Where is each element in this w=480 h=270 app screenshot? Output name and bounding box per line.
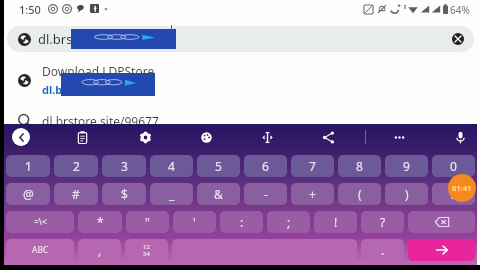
button[interactable]: ' (173, 211, 216, 233)
staticText: 1:50 (19, 2, 41, 17)
staticText: 3 (121, 158, 128, 174)
button[interactable]: 9 (385, 155, 428, 177)
staticText: " (145, 214, 150, 230)
staticText: 2 (73, 158, 80, 174)
staticText: =\< (34, 216, 47, 228)
button[interactable]: 4 (150, 155, 193, 177)
button[interactable]: ABC (6, 239, 74, 261)
button[interactable]: ) (385, 183, 428, 205)
staticText: & (214, 186, 223, 202)
staticText: 4 (168, 158, 175, 174)
staticText: dl.brs (38, 30, 73, 48)
button[interactable]: 5 (197, 155, 240, 177)
staticText: _ (169, 186, 175, 202)
button[interactable]: Back (12, 128, 30, 146)
staticText: 6 (262, 158, 269, 174)
button[interactable]: # (54, 183, 98, 205)
staticText: , (98, 242, 102, 258)
button[interactable]: _ (150, 183, 193, 205)
button[interactable] (408, 239, 475, 261)
staticText: $ (121, 186, 128, 202)
staticText: - (264, 186, 268, 202)
staticText: ; (287, 214, 291, 230)
button[interactable]: Screen recorder timer (448, 174, 476, 202)
staticText: ) (405, 186, 409, 202)
button[interactable]: / (432, 183, 475, 205)
button[interactable] (408, 211, 475, 233)
staticText: Download LDPStore (42, 63, 155, 79)
staticText: # (72, 186, 80, 202)
staticText: 12 34 (143, 243, 150, 258)
button[interactable]: Theme (195, 126, 217, 148)
button[interactable]: 0 (432, 155, 475, 177)
button[interactable]: ; (267, 211, 310, 233)
staticText: + (309, 186, 316, 202)
staticText: dl.b (42, 82, 63, 97)
button[interactable]: : (220, 211, 263, 233)
button[interactable]: =\< (6, 211, 74, 233)
staticText: 64% (450, 3, 470, 17)
staticText: ? (380, 214, 386, 230)
button[interactable]: More options (388, 126, 410, 148)
button[interactable]: 1 (6, 155, 50, 177)
staticText: ' (193, 214, 196, 230)
staticText: / (451, 186, 456, 202)
button[interactable]: & (197, 183, 240, 205)
button[interactable]: ? (361, 211, 404, 233)
staticText: 5 (215, 158, 222, 174)
staticText: 9 (403, 158, 410, 174)
button[interactable]: , (78, 239, 121, 261)
button[interactable]: . (361, 239, 404, 261)
button[interactable]: Voice input (449, 126, 471, 148)
staticText: dl.brstore.site/99677 (42, 113, 159, 129)
staticText: ( (358, 186, 362, 202)
button[interactable]: Text cursor (256, 126, 278, 148)
button[interactable]: Settings (134, 126, 156, 148)
button[interactable]: - (244, 183, 287, 205)
staticText: @ (23, 186, 34, 202)
button[interactable]: @ (6, 183, 50, 205)
button[interactable]: ! (314, 211, 357, 233)
button[interactable]: 6 (244, 155, 287, 177)
button[interactable]: 2 (54, 155, 98, 177)
button[interactable]: 7 (291, 155, 334, 177)
staticText: * (97, 214, 104, 230)
button[interactable]: dl.brs (7, 26, 474, 52)
button[interactable]: Clear (452, 33, 464, 45)
staticText: . (381, 242, 385, 258)
button[interactable]: ( (338, 183, 381, 205)
staticText: : (240, 214, 244, 230)
button[interactable]: 3 (102, 155, 146, 177)
button[interactable]: 12 34 (125, 239, 168, 261)
button[interactable]: + (291, 183, 334, 205)
button[interactable]: " (126, 211, 169, 233)
staticText: 01:41 (452, 183, 472, 193)
button[interactable]: Clipboard (71, 126, 93, 148)
button[interactable]: $ (102, 183, 146, 205)
button[interactable]: * (78, 211, 122, 233)
staticText: ! (334, 214, 338, 230)
staticText: 7 (309, 158, 316, 174)
button[interactable]: 8 (338, 155, 381, 177)
staticText: 8 (356, 158, 363, 174)
staticText: ABC (32, 244, 49, 256)
button[interactable]: Share (317, 126, 339, 148)
staticText: 0 (450, 158, 457, 174)
staticText: 1 (25, 158, 32, 174)
